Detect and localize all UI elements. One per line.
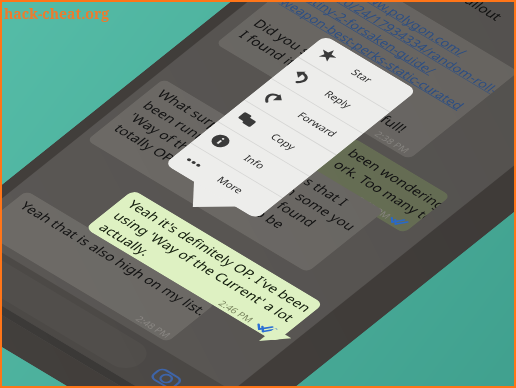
staticText: been running around with some you <box>20 11 242 148</box>
button[interactable]: Send voice message <box>55 295 112 335</box>
button[interactable]: What surprised me most is that I <box>0 0 266 186</box>
other: Camera <box>29 279 67 305</box>
staticText: Yeah it's definitely OP. I've been <box>5 110 197 229</box>
button[interactable]: Info <box>72 35 191 112</box>
button[interactable]: More <box>45 56 165 133</box>
staticText: using 'Way of the Current' a lot <box>0 122 180 239</box>
staticText: Yeah that is also high on my list. <box>0 112 93 232</box>
staticText: Did you see this one? <box>131 0 265 13</box>
other: Read <box>137 235 158 249</box>
staticText: been wondering <box>225 59 328 124</box>
staticText: Reply <box>203 2 237 24</box>
staticText: actually. <box>0 133 37 173</box>
button[interactable]: Camera <box>21 273 75 310</box>
staticText: What surprised me most is that I <box>34 0 235 123</box>
other: Read <box>270 129 289 141</box>
button[interactable]: been wondering <box>188 52 332 147</box>
staticText: 2:46 PM <box>97 212 139 239</box>
staticText: ork. Too many to <box>210 71 314 136</box>
staticText: 2:38 PM <box>253 42 295 69</box>
staticText: Copy <box>149 45 182 66</box>
staticText: I found it to be really usefull! <box>116 0 293 50</box>
staticText: More <box>96 87 129 109</box>
staticText: totally OP for me, it has to be <box>0 35 171 145</box>
staticText: 2:48 PM <box>14 227 56 254</box>
staticText: Forward <box>176 23 222 53</box>
button[interactable]: Yeah it's definitely OP. I've been <box>0 103 205 256</box>
staticText: hack-cheat.org <box>4 4 110 23</box>
button[interactable]: https://www.polygon.com/ <box>97 0 400 73</box>
button[interactable]: Reply <box>153 0 272 47</box>
staticText: weapon-best-perks-static-curated <box>158 0 350 26</box>
button[interactable]: Yeah that is also high on my list. <box>0 104 97 256</box>
button[interactable]: Message <box>0 151 37 288</box>
staticText: 'Way of the Current' and I found <box>6 23 202 144</box>
button[interactable]: Copy <box>99 13 218 90</box>
button[interactable]: Star <box>180 0 299 26</box>
staticText: 2:40 PM <box>234 108 276 135</box>
staticText: Info <box>122 66 150 85</box>
button[interactable]: Forward <box>126 0 245 69</box>
staticText: 2019/10/24/17934334/random-roll- <box>184 0 383 9</box>
